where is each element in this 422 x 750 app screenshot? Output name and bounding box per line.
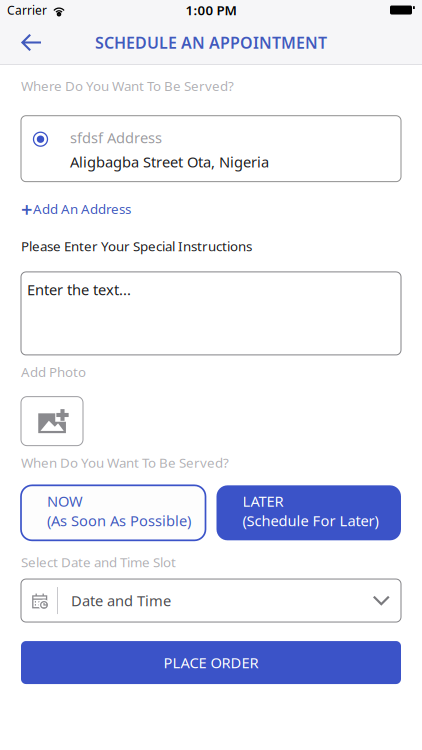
staticText: Aligbagba Street Ota, Nigeria: [70, 152, 269, 172]
button[interactable]: PLACE ORDER: [21, 641, 401, 684]
staticText: 1:00 PM: [185, 1, 236, 19]
staticText: Select Date and Time Slot: [21, 553, 176, 571]
staticText: When Do You Want To Be Served?: [21, 454, 229, 471]
staticText: LATER: [242, 491, 283, 511]
staticText: sfdsf Address: [70, 128, 162, 147]
staticText: (As Soon As Possible): [47, 511, 191, 530]
button[interactable]: Back: [0, 20, 53, 64]
staticText: Where Do You Want To Be Served?: [21, 77, 234, 95]
button[interactable]: Add Photo: [21, 397, 83, 446]
button[interactable]: +: [21, 190, 131, 228]
button[interactable]: NOW: [21, 485, 205, 540]
staticText: Please Enter Your Special Instructions: [21, 237, 252, 255]
staticText: Carrier: [7, 2, 47, 18]
button[interactable]: LATER: [216, 485, 401, 540]
staticText: SCHEDULE AN APPOINTMENT: [95, 32, 327, 53]
staticText: Add Photo: [21, 363, 86, 381]
staticText: PLACE ORDER: [163, 653, 258, 672]
staticText: Date and Time: [71, 591, 171, 610]
button[interactable]: sfdsf Address: [21, 116, 401, 182]
button[interactable]: Date and Time: [21, 579, 401, 622]
staticText: +: [21, 196, 32, 222]
staticText: Enter the text...: [27, 280, 131, 299]
staticText: (Schedule For Later): [242, 511, 378, 530]
button[interactable]: Enter the text...: [21, 272, 401, 355]
staticText: NOW: [47, 491, 83, 511]
staticText: Add An Address: [33, 200, 131, 218]
